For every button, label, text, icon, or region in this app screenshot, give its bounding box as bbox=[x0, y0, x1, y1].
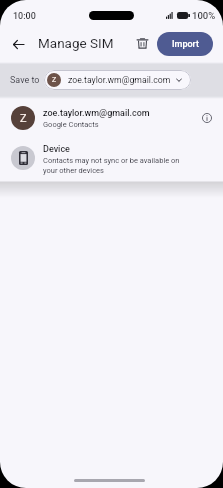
staticText: Save to bbox=[10, 75, 40, 86]
button[interactable]: Back bbox=[6, 32, 30, 56]
button[interactable]: Z bbox=[0, 100, 223, 136]
button[interactable]: Device bbox=[0, 140, 223, 178]
staticText: Z bbox=[52, 76, 57, 84]
staticText: Import bbox=[172, 39, 199, 50]
staticText: 10:00 bbox=[13, 11, 36, 22]
staticText: Z bbox=[20, 112, 27, 125]
staticText: zoe.taylor.wm@gmail.com bbox=[68, 75, 171, 85]
staticText: Manage SIM bbox=[38, 35, 114, 51]
button[interactable]: Delete bbox=[131, 32, 153, 54]
button[interactable]: Info bbox=[197, 108, 217, 128]
staticText: Contacts may not sync or be available on… bbox=[43, 156, 190, 175]
button[interactable]: Import bbox=[157, 32, 213, 56]
staticText: Device bbox=[43, 144, 70, 155]
staticText: 100% bbox=[192, 10, 216, 21]
button[interactable]: Z bbox=[44, 70, 191, 90]
staticText: zoe.taylor.wm@gmail.com bbox=[43, 108, 150, 119]
staticText: Google Contacts bbox=[43, 120, 99, 129]
